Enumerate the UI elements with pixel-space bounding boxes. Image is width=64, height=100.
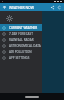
button[interactable]: RAINFALL RADAR — [0, 37, 42, 43]
button[interactable]: 7-DAY FORECAST — [0, 31, 42, 37]
staticText: APP SETTINGS — [9, 56, 30, 60]
button[interactable]: APP SETTINGS — [0, 55, 42, 61]
button[interactable]: ASTRONOMICAL DATA — [0, 43, 42, 49]
button[interactable]: Share — [50, 5, 55, 10]
staticText: 7-DAY FORECAST — [9, 32, 33, 36]
staticText: ASTRONOMICAL DATA — [9, 44, 41, 48]
button[interactable]: Open navigation drawer — [2, 5, 7, 10]
staticText: RAINFALL RADAR — [9, 38, 34, 42]
button[interactable]: CURRENT WEATHER — [0, 24, 42, 31]
button[interactable]: Refresh — [57, 5, 62, 10]
button[interactable]: AIR POLLUTION — [0, 49, 42, 55]
staticText: CURRENT WEATHER — [9, 26, 38, 30]
staticText: WEATHER NOW — [9, 5, 34, 10]
staticText: AIR POLLUTION — [9, 50, 32, 54]
